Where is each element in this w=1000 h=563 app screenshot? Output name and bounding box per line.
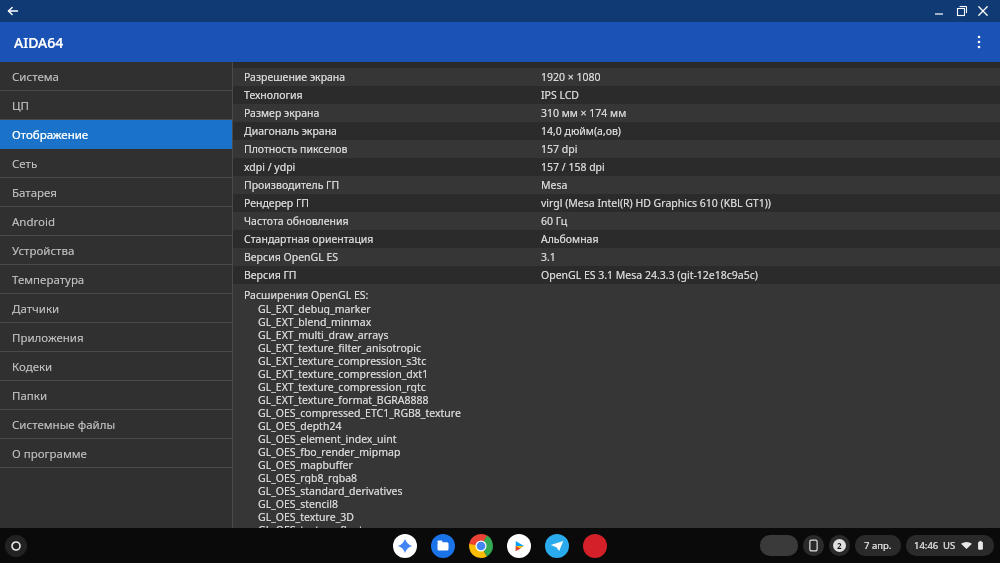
staticText: Папки <box>12 388 48 404</box>
staticText: GL_OES_compressed_ETC1_RGB8_texture <box>258 406 461 419</box>
button[interactable]: Температура <box>0 265 232 294</box>
staticText: Батарея <box>12 185 57 201</box>
button[interactable]: 7 апр. <box>855 535 901 556</box>
staticText: Диагональ экрана <box>244 124 541 138</box>
staticText: ЦП <box>12 98 29 114</box>
staticText: Стандартная ориентация <box>244 232 541 246</box>
staticText: Версия ГП <box>244 268 541 282</box>
staticText: GL_OES_standard_derivatives <box>258 484 403 497</box>
staticText: GL_EXT_texture_compression_s3tc <box>258 354 427 367</box>
button[interactable]: Датчики <box>0 294 232 323</box>
staticText: GL_EXT_texture_filter_anisotropic <box>258 341 422 354</box>
staticText: Разрешение экрана <box>244 70 541 84</box>
staticText: Расширения OpenGL ES: <box>244 288 369 302</box>
staticText: Размер экрана <box>244 106 541 120</box>
button[interactable]: Батарея <box>0 178 232 207</box>
staticText: Устройства <box>12 243 75 259</box>
staticText: GL_OES_depth24 <box>258 419 342 432</box>
staticText: Mesa <box>541 178 568 192</box>
button[interactable]: Устройства <box>0 236 232 265</box>
staticText: GL_EXT_texture_compression_dxt1 <box>258 367 429 380</box>
staticText: 14:46 <box>914 539 939 552</box>
staticText: Технология <box>244 88 541 102</box>
button[interactable]: Recent apps <box>760 535 798 556</box>
button[interactable]: Close <box>972 0 994 22</box>
staticText: AIDA64 <box>14 33 64 52</box>
staticText: Производитель ГП <box>244 178 541 192</box>
button[interactable]: Home <box>5 535 27 557</box>
button[interactable]: Кодеки <box>0 352 232 381</box>
staticText: Приложения <box>12 330 84 346</box>
staticText: Системные файлы <box>12 417 116 433</box>
staticText: GL_OES_texture_float <box>258 523 363 528</box>
staticText: GL_EXT_multi_draw_arrays <box>258 328 389 341</box>
staticText: GL_OES_element_index_uint <box>258 432 397 445</box>
staticText: 157 / 158 dpi <box>541 160 605 174</box>
button[interactable]: О программе <box>0 439 232 468</box>
button[interactable]: Android <box>0 207 232 236</box>
staticText: GL_OES_rgb8_rgba8 <box>258 471 358 484</box>
staticText: О программе <box>12 446 87 462</box>
button[interactable]: More options <box>966 29 992 55</box>
button[interactable]: Папки <box>0 381 232 410</box>
staticText: 1920 × 1080 <box>541 70 601 84</box>
button[interactable]: Система <box>0 62 232 91</box>
button[interactable]: Notifications: 2 <box>829 535 850 556</box>
staticText: GL_OES_stencil8 <box>258 497 338 510</box>
button[interactable]: Сеть <box>0 149 232 178</box>
staticText: 3.1 <box>541 250 556 264</box>
button[interactable]: Telegram <box>545 534 569 558</box>
staticText: US <box>943 539 956 552</box>
staticText: GL_EXT_texture_format_BGRA8888 <box>258 393 429 406</box>
staticText: OpenGL ES 3.1 Mesa 24.3.3 (git-12e18c9a5… <box>541 268 758 282</box>
button[interactable]: AIDA64 <box>583 534 607 558</box>
staticText: 2 <box>837 540 842 551</box>
button[interactable]: Gemini <box>393 534 417 558</box>
staticText: Android <box>12 214 56 230</box>
button[interactable]: Системные файлы <box>0 410 232 439</box>
staticText: Сеть <box>12 156 38 172</box>
staticText: GL_OES_texture_3D <box>258 510 354 523</box>
staticText: 14,0 дюйм(а,ов) <box>541 124 621 138</box>
staticText: GL_EXT_debug_marker <box>258 302 371 315</box>
staticText: Отображение <box>12 127 89 143</box>
button[interactable]: Chrome <box>469 534 493 558</box>
staticText: IPS LCD <box>541 88 579 102</box>
staticText: 157 dpi <box>541 142 578 156</box>
staticText: GL_EXT_texture_compression_rgtc <box>258 380 426 393</box>
staticText: 310 мм × 174 мм <box>541 106 627 120</box>
staticText: GL_OES_mapbuffer <box>258 458 353 471</box>
button[interactable]: Приложения <box>0 323 232 352</box>
staticText: Версия OpenGL ES <box>244 250 541 264</box>
staticText: Плотность пикселов <box>244 142 541 156</box>
staticText: Рендерер ГП <box>244 196 541 210</box>
button[interactable]: Back <box>4 2 22 20</box>
staticText: Система <box>12 69 59 85</box>
staticText: Датчики <box>12 301 60 317</box>
button[interactable]: Отображение <box>0 120 232 149</box>
button[interactable]: Files <box>431 534 455 558</box>
staticText: virgl (Mesa Intel(R) HD Graphics 610 (KB… <box>541 196 771 210</box>
staticText: Частота обновления <box>244 214 541 228</box>
button[interactable]: Maximize <box>950 0 972 22</box>
button[interactable]: Phone hub <box>803 535 824 556</box>
staticText: GL_EXT_blend_minmax <box>258 315 372 328</box>
button[interactable]: Minimize <box>928 0 950 22</box>
button[interactable]: 14:46 <box>906 535 994 556</box>
staticText: Температура <box>12 272 85 288</box>
staticText: 60 Гц <box>541 214 568 228</box>
button[interactable]: ЦП <box>0 91 232 120</box>
button[interactable]: Play Store <box>507 534 531 558</box>
staticText: Кодеки <box>12 359 53 375</box>
staticText: xdpi / ydpi <box>244 160 541 174</box>
staticText: 7 апр. <box>864 539 892 552</box>
staticText: GL_OES_fbo_render_mipmap <box>258 445 401 458</box>
staticText: Альбомная <box>541 232 599 246</box>
